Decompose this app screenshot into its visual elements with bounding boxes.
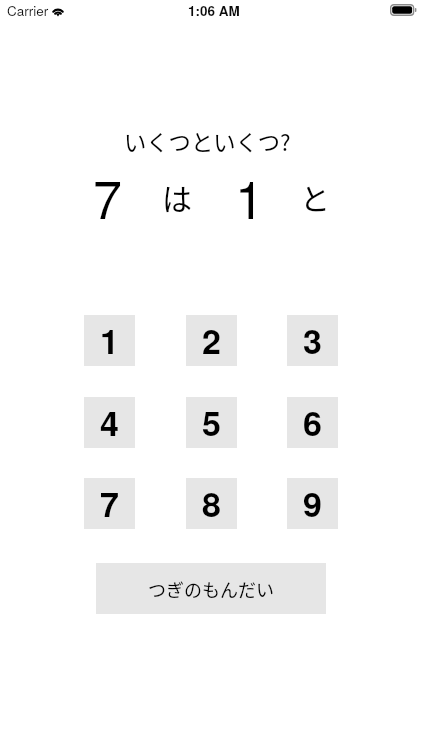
button[interactable]: つぎのもんだい (96, 563, 326, 614)
staticText: 1:06 AM (188, 1, 240, 20)
staticText: 9 (303, 479, 322, 528)
other: Wi-Fi signal (51, 5, 65, 16)
staticText: 7 (93, 159, 122, 233)
staticText: 7 (100, 479, 119, 528)
button[interactable]: 1 (84, 315, 135, 366)
staticText: つぎのもんだい (148, 576, 274, 602)
staticText: Carrier (7, 1, 49, 20)
button[interactable]: 4 (84, 397, 135, 448)
button[interactable]: 7 (84, 478, 135, 529)
staticText: は (162, 175, 192, 218)
staticText: 8 (202, 479, 221, 528)
staticText: 4 (100, 398, 119, 447)
button[interactable]: 2 (186, 315, 237, 366)
staticText: 5 (202, 398, 221, 447)
other: Battery full (390, 4, 417, 16)
button[interactable]: 6 (287, 397, 338, 448)
button[interactable]: 3 (287, 315, 338, 366)
staticText: 1 (235, 159, 264, 233)
staticText: と (300, 175, 330, 218)
staticText: 3 (303, 316, 322, 365)
staticText: 2 (202, 316, 221, 365)
staticText: 6 (303, 398, 322, 447)
staticText: 1 (100, 316, 119, 365)
button[interactable]: 9 (287, 478, 338, 529)
button[interactable]: 8 (186, 478, 237, 529)
staticText: いくつといくつ? (124, 125, 291, 157)
button[interactable]: 5 (186, 397, 237, 448)
